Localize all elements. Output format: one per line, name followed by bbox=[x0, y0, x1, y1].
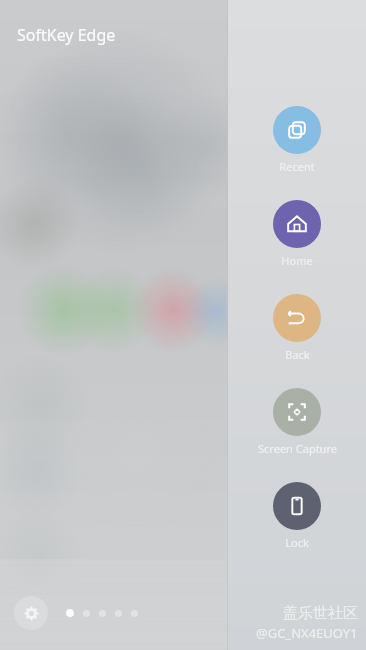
button[interactable]: Home bbox=[242, 198, 352, 270]
button[interactable]: Back bbox=[242, 292, 352, 364]
staticText: @GC_NX4EUOY1 bbox=[256, 624, 358, 642]
staticText: Back bbox=[285, 347, 310, 362]
button[interactable]: Recent bbox=[242, 104, 352, 176]
staticText: Recent bbox=[279, 159, 315, 174]
button[interactable]: Settings bbox=[14, 596, 48, 630]
staticText: SoftKey Edge bbox=[17, 24, 116, 46]
staticText: Lock bbox=[285, 535, 309, 550]
button[interactable]: Screen Capture bbox=[242, 386, 352, 458]
staticText: Home bbox=[281, 253, 313, 268]
button[interactable]: Lock bbox=[242, 480, 352, 552]
staticText: 盖乐世社区 bbox=[283, 604, 358, 623]
staticText: Screen Capture bbox=[258, 441, 337, 456]
